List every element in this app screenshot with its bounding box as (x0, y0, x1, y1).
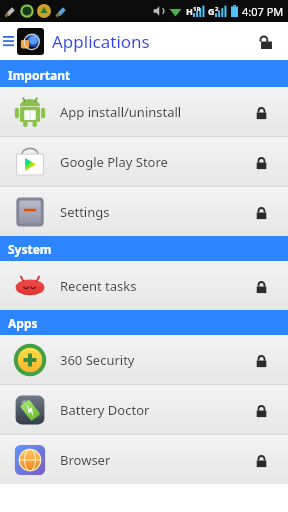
staticText: App install/uninstall (60, 103, 182, 121)
button[interactable]: Recent tasks (0, 261, 288, 310)
button[interactable]: Menu (0, 22, 17, 60)
button[interactable]: App install/uninstall (0, 87, 288, 136)
staticText: Google Play Store (60, 153, 168, 171)
staticText: H (186, 5, 193, 17)
staticText: 360 Security (60, 351, 135, 369)
button[interactable]: Lock Google Play Store (246, 147, 276, 177)
staticText: Settings (60, 203, 110, 221)
staticText: System (8, 241, 52, 257)
staticText: 2 (215, 5, 219, 13)
button[interactable]: Settings (0, 187, 288, 236)
staticText: Important (8, 67, 71, 83)
staticText: G (208, 5, 215, 17)
button[interactable]: Google Play Store (0, 137, 288, 186)
button[interactable]: 360 Security (0, 335, 288, 384)
button[interactable]: Lock App install/uninstall (246, 97, 276, 127)
staticText: Browser (60, 451, 111, 469)
staticText: 1R (193, 5, 201, 13)
staticText: Applications (52, 30, 150, 53)
button[interactable]: Lock Recent tasks (246, 271, 276, 301)
staticText: Apps (8, 315, 38, 331)
button[interactable]: Lock Battery Doctor (246, 395, 276, 425)
button[interactable]: Browser (0, 435, 288, 484)
staticText: Battery Doctor (60, 401, 150, 419)
button[interactable]: Lock Settings (246, 197, 276, 227)
button[interactable]: Battery Doctor (0, 385, 288, 434)
staticText: 4:07 PM (242, 4, 284, 19)
staticText: Recent tasks (60, 277, 137, 295)
button[interactable]: Lock Browser (246, 445, 276, 475)
button[interactable]: Unlock (244, 22, 288, 60)
button[interactable]: Lock 360 Security (246, 345, 276, 375)
